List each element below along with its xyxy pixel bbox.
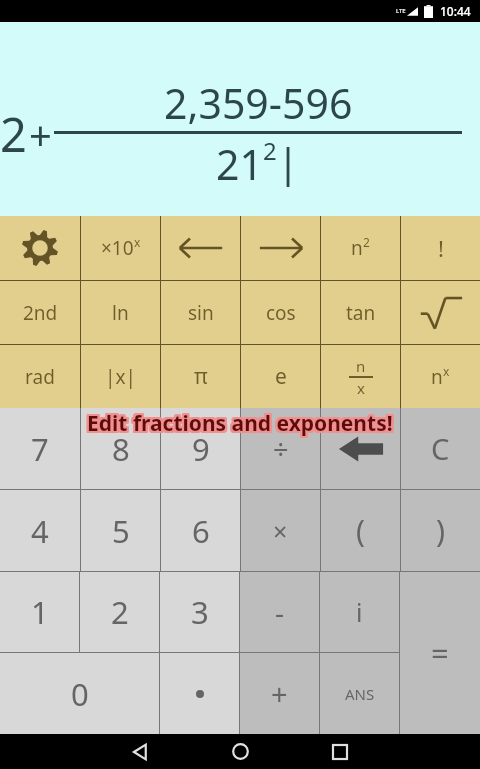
staticText: π <box>194 362 208 391</box>
staticText: 9 <box>192 428 210 470</box>
button[interactable]: ) <box>401 490 480 571</box>
staticText: Edit fractions and exponents! <box>85 410 391 439</box>
button[interactable]: π <box>161 345 240 408</box>
button[interactable]: + <box>240 653 319 734</box>
staticText: 2 <box>263 134 277 167</box>
staticText: 2nd <box>23 300 58 326</box>
staticText: Edit fractions and exponents! <box>87 407 393 436</box>
staticText: C <box>431 429 450 468</box>
staticText: Edit fractions and exponents! <box>88 409 394 438</box>
staticText: n <box>431 364 443 390</box>
staticText: i <box>356 595 363 629</box>
staticText: | <box>277 134 300 188</box>
button[interactable]: 4 <box>0 490 80 571</box>
staticText: cos <box>266 300 296 326</box>
staticText: 1 <box>31 591 49 633</box>
staticText: 3 <box>191 591 209 633</box>
button[interactable]: rad <box>0 345 80 408</box>
staticText: ÷ <box>273 430 289 467</box>
button[interactable]: sin <box>161 281 240 344</box>
staticText: 21 <box>216 136 263 192</box>
staticText: Edit fractions and exponents! <box>89 407 395 436</box>
button[interactable]: ( <box>321 490 400 571</box>
staticText: Edit fractions and exponents! <box>85 408 391 437</box>
staticText: Edit fractions and exponents! <box>88 408 394 437</box>
staticText: 2,359-596 <box>164 75 353 131</box>
staticText: Edit fractions and exponents! <box>86 409 392 438</box>
staticText: ! <box>438 233 444 263</box>
button[interactable]: Decimal point <box>160 653 239 734</box>
staticText: ln <box>112 300 129 326</box>
staticText: Edit fractions and exponents! <box>85 407 391 436</box>
button[interactable]: n <box>401 345 480 408</box>
button[interactable]: Fraction <box>321 345 400 408</box>
button[interactable]: Back <box>109 734 171 769</box>
staticText: Edit fractions and exponents! <box>86 411 392 440</box>
staticText: Edit fractions and exponents! <box>87 409 393 438</box>
button[interactable]: Move right <box>241 216 320 280</box>
staticText: ( <box>356 510 365 551</box>
button[interactable]: Square root <box>401 281 480 344</box>
button[interactable]: ÷ <box>241 408 320 489</box>
staticText: ×10 <box>101 235 134 261</box>
staticText: Edit fractions and exponents! <box>89 410 395 439</box>
button[interactable]: Home <box>209 734 271 769</box>
staticText: 6 <box>192 510 210 552</box>
staticText: Edit fractions and exponents! <box>85 409 391 438</box>
staticText: ANS <box>345 684 375 704</box>
staticText: Edit fractions and exponents! <box>88 407 394 436</box>
button[interactable]: |x| <box>81 345 160 408</box>
button[interactable]: e <box>241 345 320 408</box>
button[interactable]: cos <box>241 281 320 344</box>
staticText: e <box>275 362 287 391</box>
staticText: 2 <box>111 591 129 633</box>
button[interactable]: Move left <box>161 216 240 280</box>
button[interactable]: ! <box>401 216 480 280</box>
staticText: Edit fractions and exponents! <box>86 407 392 436</box>
button[interactable]: 6 <box>161 490 240 571</box>
staticText: n <box>356 356 366 376</box>
button[interactable]: 0 <box>0 653 159 734</box>
staticText: Edit fractions and exponents! <box>87 411 393 440</box>
staticText: Edit fractions and exponents! <box>87 408 393 437</box>
button[interactable]: × <box>241 490 320 571</box>
staticText: n <box>351 235 363 261</box>
staticText: sin <box>188 300 214 326</box>
button[interactable]: C <box>401 408 480 489</box>
button[interactable]: ×10 <box>81 216 160 280</box>
staticText: 8 <box>112 428 130 470</box>
button[interactable]: Backspace <box>321 408 400 489</box>
button[interactable]: 2nd <box>0 281 80 344</box>
button[interactable]: 8 <box>81 408 160 489</box>
button[interactable]: 2 <box>80 572 159 652</box>
button[interactable]: 1 <box>0 572 79 652</box>
staticText: |x| <box>105 364 136 390</box>
staticText: 4 <box>31 510 49 552</box>
staticText: Edit fractions and exponents! <box>89 411 395 440</box>
button[interactable]: n <box>321 216 400 280</box>
staticText: rad <box>25 364 55 390</box>
staticText: × <box>273 514 288 548</box>
button[interactable]: - <box>240 572 319 652</box>
button[interactable]: Recents <box>309 734 371 769</box>
staticText: LTE <box>396 7 406 15</box>
staticText: x <box>134 234 141 250</box>
staticText: ) <box>436 510 445 551</box>
staticText: Edit fractions and exponents! <box>85 411 391 440</box>
button[interactable]: 7 <box>0 408 80 489</box>
button[interactable]: = <box>400 572 480 734</box>
button[interactable]: 3 <box>160 572 239 652</box>
staticText: 2 <box>363 234 370 250</box>
staticText: 10:44 <box>440 3 471 19</box>
button[interactable]: tan <box>321 281 400 344</box>
staticText: 7 <box>31 428 49 470</box>
staticText: x <box>357 378 365 398</box>
staticText: + <box>29 107 52 161</box>
button[interactable]: ln <box>81 281 160 344</box>
button[interactable]: Settings <box>0 216 80 280</box>
button[interactable]: 5 <box>81 490 160 571</box>
button[interactable]: i <box>320 572 399 652</box>
button[interactable]: ANS <box>320 653 399 734</box>
button[interactable]: 9 <box>161 408 240 489</box>
staticText: x <box>443 363 450 379</box>
